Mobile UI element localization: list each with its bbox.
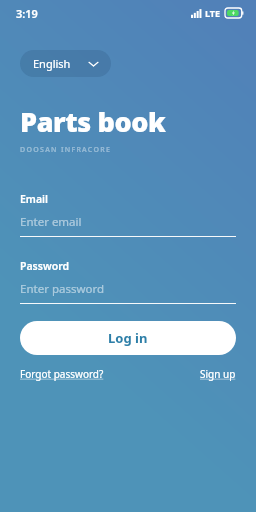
staticText: Sign up [200, 367, 236, 381]
button[interactable]: Log in [20, 321, 236, 355]
staticText: Log in [108, 329, 148, 347]
staticText: DOOSAN INFRACORE [20, 145, 112, 155]
staticText: English [33, 56, 71, 71]
staticText: Password [20, 259, 70, 273]
button[interactable]: Sign up [200, 367, 236, 381]
staticText: Parts book [20, 103, 166, 140]
staticText: 3:19 [16, 6, 38, 21]
button[interactable]: Forgot password? [20, 367, 104, 381]
button[interactable]: Password [20, 259, 236, 304]
staticText: Forgot password? [20, 367, 104, 381]
staticText: Email [20, 192, 49, 206]
staticText: Enter password [20, 281, 105, 297]
staticText: Enter email [20, 214, 82, 230]
button[interactable]: Email [20, 192, 236, 237]
staticText: LTE [205, 7, 221, 19]
button[interactable]: English [20, 50, 111, 77]
